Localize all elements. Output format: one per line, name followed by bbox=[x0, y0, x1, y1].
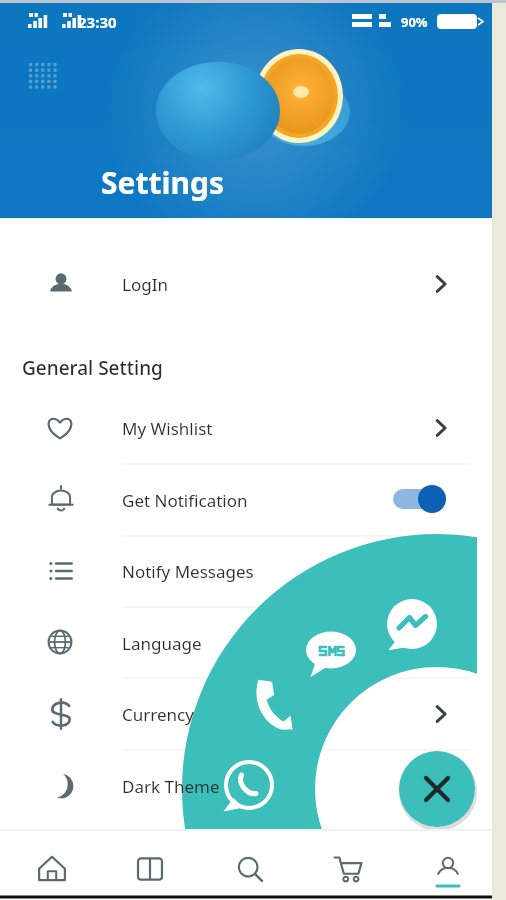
staticText: Dark Theme bbox=[122, 775, 220, 798]
staticText: Currency bbox=[122, 703, 194, 726]
button[interactable]: Profile bbox=[392, 831, 490, 900]
button[interactable]: Menu bbox=[22, 56, 60, 94]
staticText: Get Notification bbox=[122, 489, 248, 512]
button[interactable]: Language bbox=[0, 608, 506, 679]
staticText: Notify Messages bbox=[122, 560, 254, 583]
staticText: Settings bbox=[101, 162, 224, 203]
button[interactable]: Close menu bbox=[399, 751, 475, 827]
button[interactable]: Get Notification bbox=[0, 465, 506, 536]
staticText: My Wishlist bbox=[122, 417, 213, 440]
button[interactable]: Messenger bbox=[385, 597, 439, 651]
button[interactable]: Categories bbox=[98, 831, 196, 900]
button[interactable]: LogIn bbox=[0, 249, 506, 320]
button[interactable]: Call bbox=[245, 676, 299, 730]
button[interactable]: Cart bbox=[294, 831, 392, 900]
button[interactable]: Search bbox=[196, 831, 294, 900]
button[interactable]: Dark Theme bbox=[0, 751, 506, 822]
button[interactable]: SMS bbox=[305, 625, 357, 677]
staticText: Language bbox=[122, 632, 202, 655]
staticText: 23:30 bbox=[78, 12, 117, 32]
button[interactable]: Currency bbox=[0, 679, 506, 750]
button[interactable]: My Wishlist bbox=[0, 393, 506, 464]
staticText: General Setting bbox=[22, 355, 163, 381]
staticText: LogIn bbox=[122, 273, 168, 296]
staticText: 90% bbox=[401, 13, 428, 31]
button[interactable]: WhatsApp bbox=[222, 758, 276, 812]
button[interactable]: Notify Messages bbox=[0, 536, 506, 607]
button[interactable]: Home bbox=[0, 831, 98, 900]
